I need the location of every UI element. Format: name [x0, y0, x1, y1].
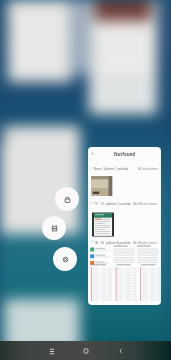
- button[interactable]: Lock app: [55, 187, 79, 211]
- staticText: 18 . 14 . Jahren 8 putzlite: [94, 241, 131, 245]
- staticText: Alle Woche unsere: [133, 202, 158, 206]
- button[interactable]: Screenshot: [53, 247, 77, 271]
- staticText: Notfound: [114, 151, 136, 157]
- staticText: Alle Woche unsere: [133, 241, 158, 245]
- staticText: All Send-Jahren: [138, 167, 158, 171]
- button[interactable]: Back: [111, 341, 131, 360]
- button[interactable]: Home: [76, 341, 96, 360]
- button[interactable]: Split screen: [42, 216, 66, 240]
- button[interactable]: Notfound: [88, 147, 161, 305]
- button[interactable]: Recents: [42, 341, 62, 360]
- staticText: Ihrer / Jahren 1 putzlite: [94, 167, 129, 171]
- staticText: 17 . 12 . Jahren 1 putzlite: [94, 202, 131, 206]
